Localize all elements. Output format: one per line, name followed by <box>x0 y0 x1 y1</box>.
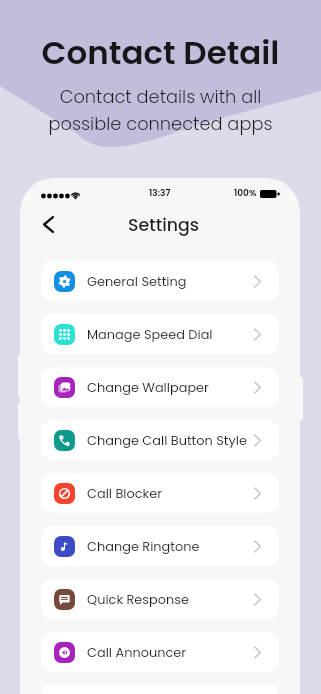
button[interactable]: Call Blocker <box>42 473 278 513</box>
button[interactable]: Change Wallpaper <box>42 367 278 407</box>
staticText: General Setting <box>87 272 187 290</box>
staticText: Change Call Button Style <box>87 431 247 449</box>
staticText: Manage Speed Dial <box>87 325 213 343</box>
button[interactable]: Quick Response <box>42 579 278 619</box>
button[interactable]: Change Call Button Style <box>42 420 278 460</box>
staticText: 13:37 <box>149 187 171 200</box>
staticText: Call Blocker <box>87 484 163 502</box>
staticText: Contact details with all possible connec… <box>0 84 321 137</box>
staticText: Call Announcer <box>87 643 187 661</box>
staticText: Quick Response <box>87 590 189 608</box>
staticText: Settings <box>128 213 200 237</box>
button[interactable]: Change Ringtone <box>42 526 278 566</box>
staticText: Change Wallpaper <box>87 378 209 396</box>
staticText: 100% <box>234 187 257 200</box>
staticText: Contact Detail <box>0 30 321 76</box>
button[interactable]: Back <box>34 210 62 238</box>
button[interactable]: General Setting <box>42 261 278 301</box>
button[interactable]: Call Announcer <box>42 632 278 672</box>
button[interactable]: Manage Speed Dial <box>42 314 278 354</box>
staticText: Change Ringtone <box>87 537 200 555</box>
